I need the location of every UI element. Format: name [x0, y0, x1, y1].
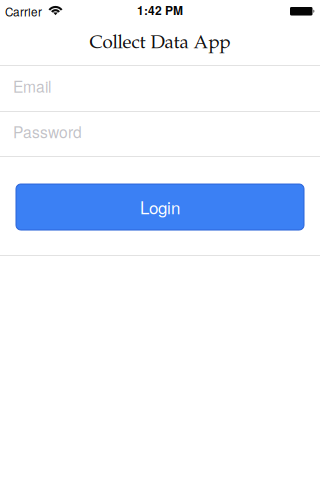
staticText: Password	[13, 120, 82, 143]
staticText: Carrier	[5, 3, 42, 20]
staticText: Login	[140, 195, 180, 219]
staticText: Email	[13, 75, 51, 97]
button[interactable]: Login	[16, 184, 304, 230]
button[interactable]: Password	[0, 112, 320, 156]
button[interactable]: Email	[0, 66, 320, 111]
staticText: 1:42 PM	[137, 1, 183, 19]
staticText: Collect Data App	[89, 35, 230, 53]
